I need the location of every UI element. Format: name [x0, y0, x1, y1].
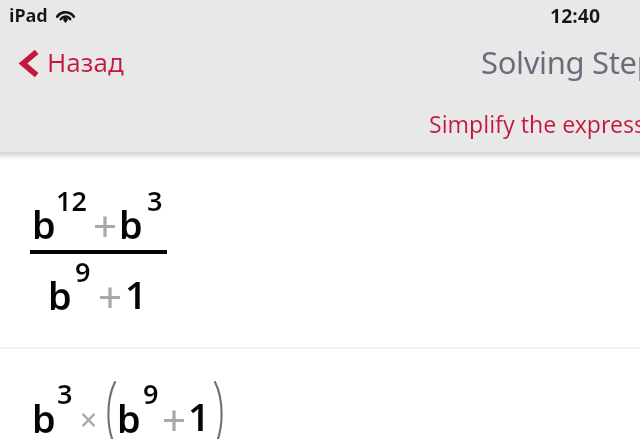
staticText: 12 [56, 182, 87, 219]
staticText: Назад [47, 44, 124, 79]
staticText: iPad [9, 3, 48, 28]
staticText: 9 [75, 253, 91, 290]
staticText: 1 [125, 268, 147, 320]
staticText: 3 [57, 375, 73, 412]
staticText: 12:40 [550, 2, 601, 29]
staticText: b [117, 392, 141, 439]
button[interactable]: b [0, 153, 640, 347]
button[interactable]: b [0, 349, 640, 439]
staticText: b [48, 269, 72, 321]
staticText: + [93, 197, 118, 254]
staticText: 1 [188, 390, 210, 439]
staticText: × [80, 399, 98, 439]
staticText: b [119, 198, 143, 250]
staticText: 9 [143, 375, 159, 412]
other: Wi-Fi [55, 7, 76, 22]
staticText: 3 [147, 182, 163, 219]
staticText: b [32, 392, 56, 439]
staticText: + [98, 268, 123, 325]
staticText: Simplify the expression [429, 108, 640, 139]
button[interactable]: Назад [8, 40, 136, 87]
staticText: + [162, 391, 187, 439]
staticText: Solving Steps [481, 41, 640, 83]
staticText: b [32, 198, 56, 250]
